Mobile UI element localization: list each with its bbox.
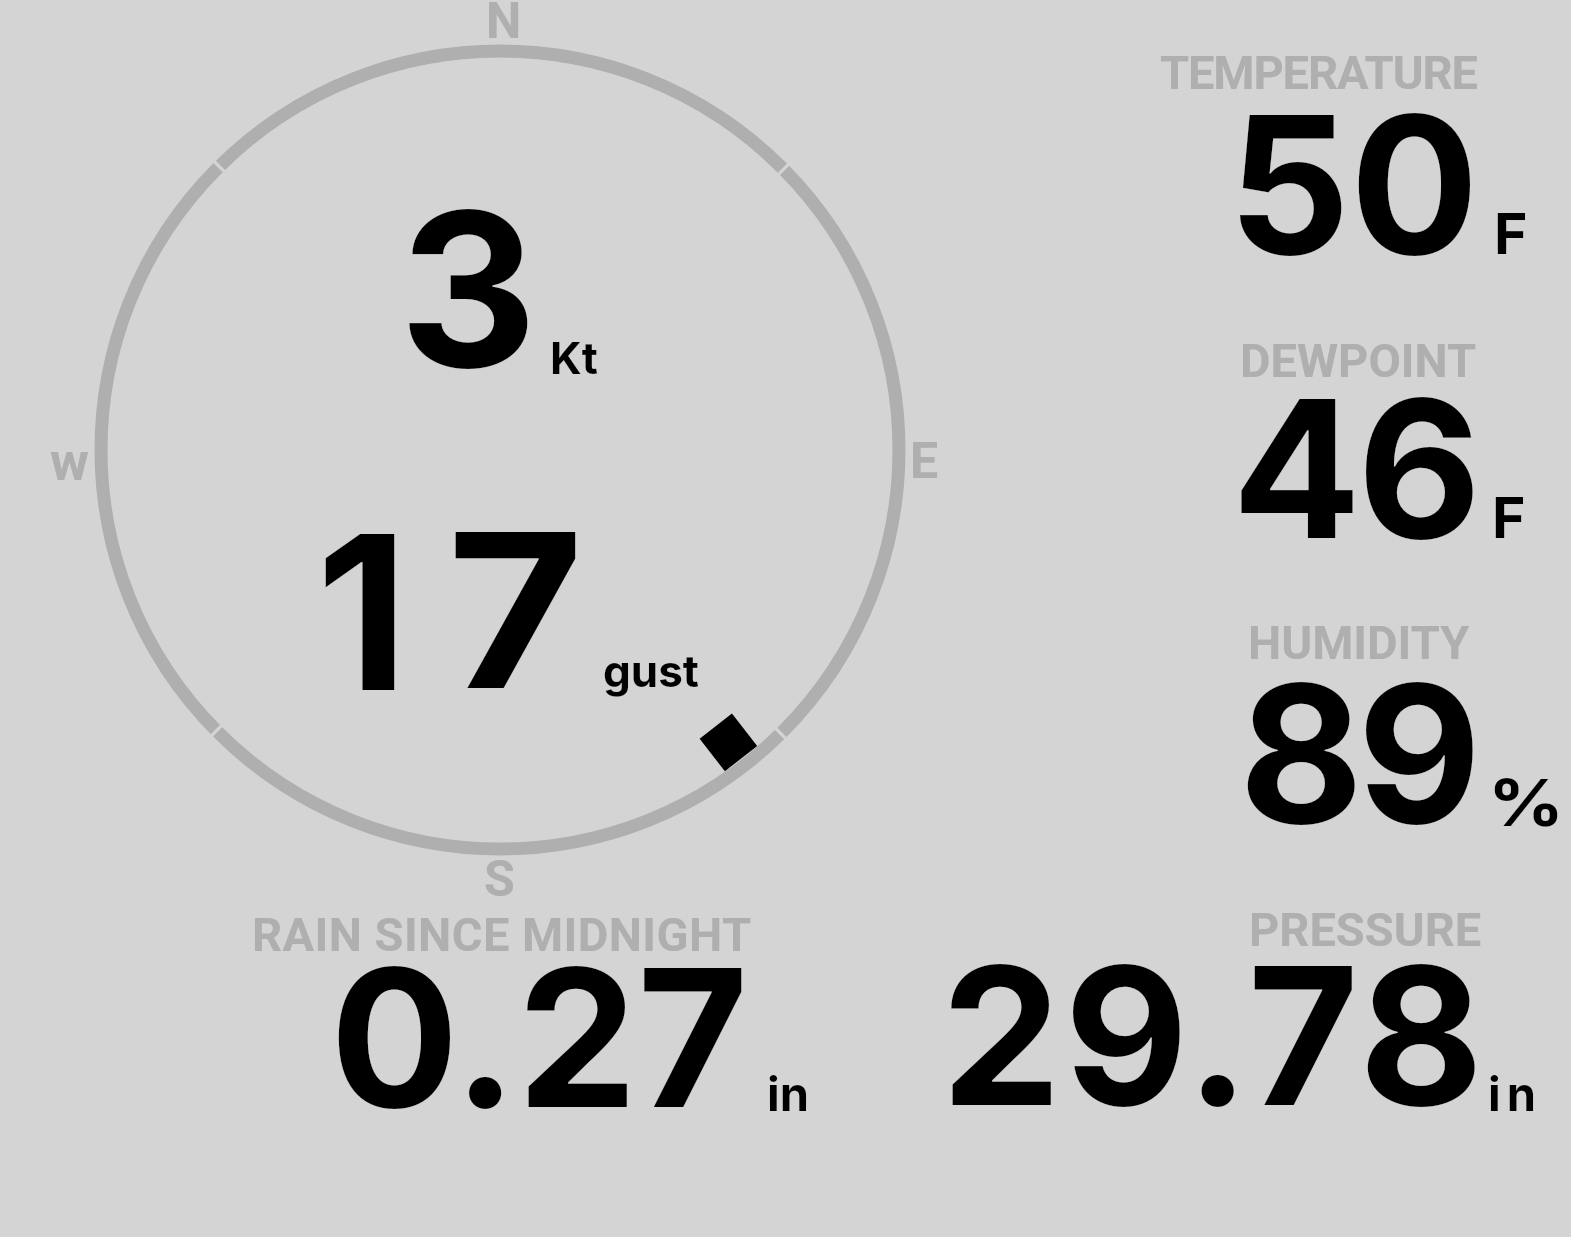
button[interactable]: Rain since midnight 0.27 inches bbox=[240, 900, 820, 1125]
staticText: w bbox=[50, 431, 89, 493]
staticText: DEWPOINT bbox=[1240, 333, 1477, 388]
staticText: 7 bbox=[447, 481, 584, 740]
staticText: RAIN SINCE MIDNIGHT bbox=[252, 907, 752, 962]
staticText: % bbox=[1488, 764, 1564, 841]
staticText: gust bbox=[603, 644, 699, 697]
button[interactable]: Pressure 29.78 inches bbox=[930, 896, 1550, 1125]
staticText: in bbox=[767, 1065, 809, 1122]
button[interactable]: Humidity 89 percent bbox=[1130, 610, 1550, 838]
staticText: F bbox=[1492, 483, 1526, 552]
button[interactable]: Wind speed 3 knots, gusting 17, directio… bbox=[92, 42, 908, 858]
staticText: in bbox=[1488, 1065, 1542, 1122]
staticText: TEMPERATURE bbox=[1160, 45, 1477, 100]
staticText: HUMIDITY bbox=[1248, 615, 1470, 670]
button[interactable]: Temperature 50 degrees Fahrenheit bbox=[1130, 40, 1550, 270]
staticText: Kt bbox=[550, 331, 598, 384]
staticText: 3 bbox=[399, 160, 538, 419]
staticText: 46 bbox=[1232, 353, 1478, 584]
staticText: E bbox=[910, 432, 939, 491]
staticText: S bbox=[484, 850, 515, 909]
staticText: 29.78 bbox=[941, 920, 1487, 1151]
staticText: 50 bbox=[1228, 69, 1479, 300]
staticText: N bbox=[486, 0, 522, 51]
button[interactable]: Dewpoint 46 degrees Fahrenheit bbox=[1130, 328, 1550, 556]
staticText: PRESSURE bbox=[1249, 902, 1482, 957]
staticText: F bbox=[1494, 199, 1528, 268]
staticText: 1 bbox=[316, 483, 409, 742]
staticText: 0.27 bbox=[330, 922, 749, 1153]
staticText: 89 bbox=[1239, 638, 1476, 869]
